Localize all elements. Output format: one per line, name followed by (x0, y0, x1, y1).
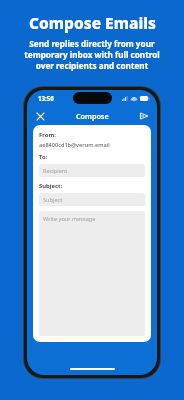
staticText: ae8400cd1b@verum.email (39, 141, 110, 149)
button[interactable]: Recipient (39, 164, 145, 177)
staticText: From: (39, 131, 56, 139)
staticText: Recipient (43, 167, 68, 175)
staticText: Subject: (39, 182, 63, 190)
staticText: To: (39, 153, 48, 161)
staticText: Subject (43, 196, 63, 204)
button[interactable]: Write your message (39, 211, 145, 336)
button[interactable]: Send (136, 108, 152, 124)
staticText: Compose Emails (29, 12, 156, 33)
button[interactable]: Subject (39, 193, 145, 206)
button[interactable]: Close (32, 108, 48, 124)
staticText: Send replies directly from your temporar… (14, 38, 170, 71)
staticText: Compose (76, 111, 109, 121)
staticText: Write your message (43, 215, 96, 223)
staticText: 13:56 (38, 94, 54, 102)
